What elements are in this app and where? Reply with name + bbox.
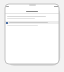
other: Item icon: [6, 22, 8, 24]
button[interactable]: [5, 9, 59, 13]
button[interactable]: Item icon: [5, 21, 59, 24]
